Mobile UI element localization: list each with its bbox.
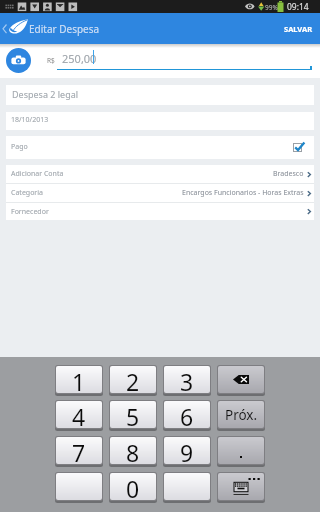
button[interactable]: 4 — [56, 401, 102, 428]
staticText: 6 — [180, 401, 194, 428]
staticText: 1 — [72, 366, 86, 393]
button[interactable]: Decimal point — [218, 437, 264, 464]
button[interactable]: Pago — [6, 136, 314, 159]
button[interactable]: SALVAR — [277, 16, 320, 42]
button[interactable]: 6 — [164, 401, 210, 428]
staticText: Despesa 2 legal — [12, 88, 79, 100]
button[interactable]: Categoria — [6, 184, 314, 202]
button[interactable]: 5 — [110, 401, 156, 428]
button[interactable]: 1 — [56, 366, 102, 393]
staticText: 250,00 — [62, 51, 97, 66]
staticText: 99% — [265, 3, 278, 12]
staticText: 3 — [180, 366, 194, 393]
staticText: Próx. — [225, 406, 258, 424]
button[interactable]: 18/10/2013 — [6, 112, 314, 130]
button[interactable]: Back — [0, 13, 9, 44]
button[interactable] — [164, 473, 210, 500]
button[interactable]: 0 — [110, 473, 156, 500]
staticText: 5 — [126, 401, 140, 428]
button[interactable]: Despesa 2 legal — [6, 85, 314, 105]
staticText: 09:14 — [287, 1, 309, 13]
staticText: Encargos Funcionarios - Horas Extras — [182, 188, 304, 198]
staticText: 4 — [72, 401, 86, 428]
staticText: Editar Despesa — [29, 22, 100, 36]
staticText: 7 — [72, 437, 86, 464]
button[interactable]: 8 — [110, 437, 156, 464]
staticText: 0 — [126, 473, 140, 500]
button[interactable]: Switch keyboard — [218, 473, 264, 500]
button[interactable]: 7 — [56, 437, 102, 464]
staticText: Fornecedor — [11, 207, 49, 217]
button[interactable]: 3 — [164, 366, 210, 393]
staticText: 9 — [180, 437, 194, 464]
button[interactable]: Adicionar Conta — [6, 165, 314, 183]
button[interactable]: Next — [218, 401, 264, 428]
button[interactable] — [56, 473, 102, 500]
staticText: 18/10/2013 — [11, 115, 49, 125]
staticText: Bradesco — [273, 169, 304, 179]
staticText: R$ — [47, 56, 55, 65]
staticText: Adicionar Conta — [11, 169, 64, 179]
button[interactable]: Take photo — [6, 48, 31, 73]
staticText: Pago — [11, 142, 28, 152]
staticText: 2 — [126, 366, 140, 393]
staticText: 8 — [126, 437, 140, 464]
button[interactable]: 2 — [110, 366, 156, 393]
staticText: SALVAR — [284, 24, 313, 34]
button[interactable]: Fornecedor — [6, 203, 314, 220]
staticText: Categoria — [11, 188, 43, 198]
button[interactable]: 9 — [164, 437, 210, 464]
button[interactable]: Backspace — [218, 366, 264, 393]
